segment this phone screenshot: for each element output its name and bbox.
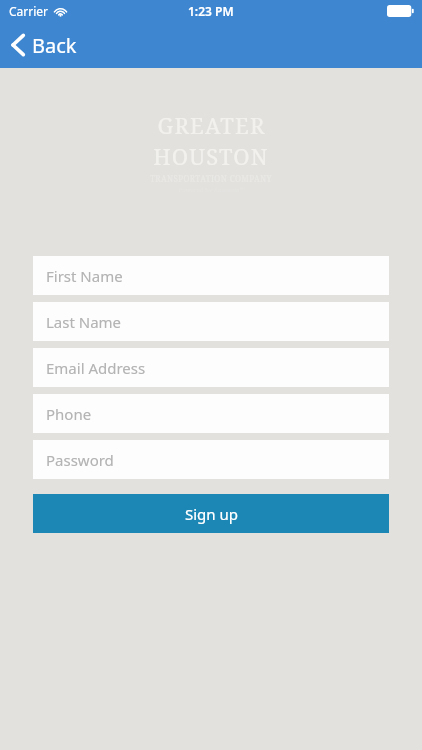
staticText: Email Address [46,358,146,378]
button[interactable]: Email Address [33,348,389,387]
button[interactable]: Sign up [33,494,389,533]
staticText: Phone [46,404,92,424]
button[interactable]: First Name [33,256,389,295]
button[interactable]: Password [33,440,389,479]
staticText: 1:23 PM [188,3,234,19]
staticText: Last Name [46,312,122,332]
staticText: Carrier [9,3,49,19]
staticText: Password [46,450,114,470]
button[interactable]: Phone [33,394,389,433]
button[interactable]: Last Name [33,302,389,341]
staticText: HOUSTON [153,141,269,171]
staticText: GREATER [157,110,266,140]
staticText: First Name [46,266,123,286]
button[interactable]: Back [0,22,91,68]
staticText: Back [32,32,77,59]
staticText: Sign up [185,504,238,524]
